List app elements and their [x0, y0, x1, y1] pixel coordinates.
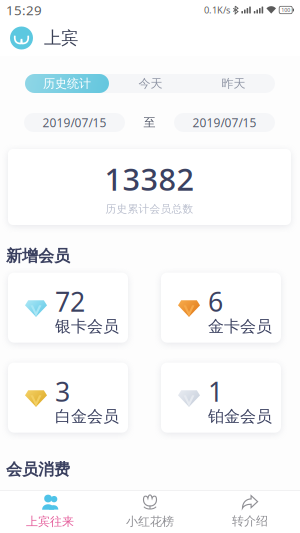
staticText: 上宾往来 — [26, 514, 74, 529]
staticText: 历史统计 — [43, 76, 91, 91]
staticText: 转介绍 — [232, 514, 268, 528]
button[interactable]: 转介绍 — [200, 490, 300, 533]
staticText: 历史累计会员总数 — [105, 202, 193, 215]
button[interactable]: 小红花榜 — [100, 490, 200, 533]
staticText: 小红花榜 — [126, 514, 174, 529]
staticText: 3 — [55, 374, 70, 409]
staticText: 银卡会员 — [55, 317, 119, 336]
button[interactable]: 2019/07/15 — [174, 113, 275, 132]
staticText: 铂金会员 — [208, 407, 272, 426]
button[interactable]: 72 — [8, 273, 128, 343]
staticText: 6 — [208, 284, 223, 319]
staticText: 13382 — [104, 159, 194, 199]
staticText: 白金会员 — [55, 407, 119, 426]
button[interactable]: 历史统计 — [25, 74, 109, 93]
staticText: 100 — [281, 6, 290, 14]
button[interactable]: 今天 — [109, 74, 192, 93]
button[interactable]: 6 — [161, 273, 281, 343]
staticText: 上宾 — [44, 27, 78, 49]
staticText: 会员消费 — [6, 460, 70, 479]
staticText: 15:29 — [6, 1, 42, 19]
button[interactable]: 2019/07/15 — [24, 113, 125, 132]
staticText: 2019/07/15 — [192, 114, 256, 130]
staticText: 金卡会员 — [208, 317, 272, 336]
staticText: 1 — [208, 374, 223, 409]
staticText: 2019/07/15 — [42, 114, 106, 130]
staticText: 昨天 — [221, 76, 245, 91]
button[interactable]: 昨天 — [192, 74, 275, 93]
staticText: 新增会员 — [6, 246, 70, 266]
button[interactable]: 1 — [161, 363, 281, 433]
staticText: 0.1K/s — [204, 4, 230, 16]
staticText: 至 — [143, 115, 155, 130]
staticText: 今天 — [138, 76, 162, 91]
staticText: 72 — [55, 284, 85, 319]
button[interactable]: 3 — [8, 363, 128, 433]
button[interactable]: 上宾往来 — [0, 490, 100, 533]
